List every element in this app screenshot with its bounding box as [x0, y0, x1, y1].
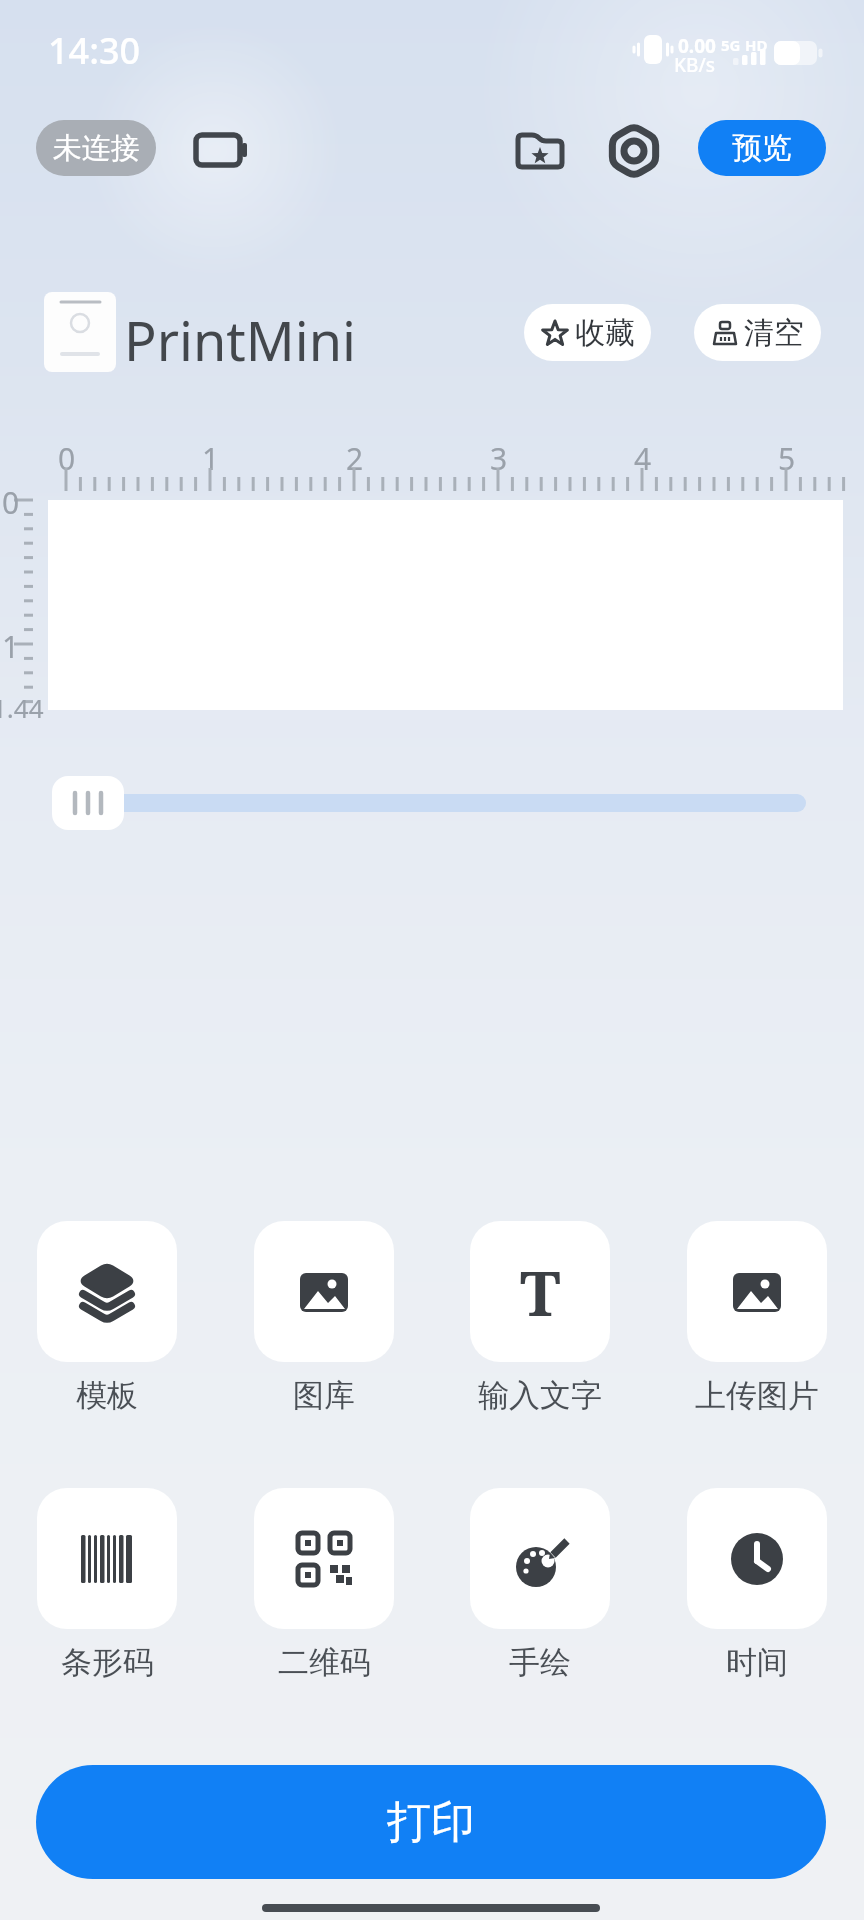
staticText: 收藏	[575, 314, 635, 352]
staticText: 手绘	[509, 1643, 571, 1682]
staticText: 0	[58, 438, 74, 479]
button[interactable]	[254, 1221, 394, 1362]
button[interactable]	[687, 1488, 827, 1629]
button[interactable]: 未连接	[36, 120, 156, 176]
staticText: 清空	[744, 314, 804, 352]
staticText: 2	[346, 438, 362, 479]
button[interactable]	[37, 1221, 177, 1362]
button[interactable]	[470, 1221, 610, 1362]
staticText: 图库	[293, 1376, 355, 1415]
staticText: 上传图片	[695, 1376, 819, 1415]
staticText: 5G	[721, 35, 741, 55]
staticText: 1	[202, 438, 218, 479]
staticText: 1.44	[0, 690, 44, 725]
staticText: PrintMini	[124, 303, 356, 377]
staticText: 输入文字	[478, 1376, 602, 1415]
staticText: 未连接	[53, 130, 140, 167]
staticText: 二维码	[278, 1643, 371, 1682]
staticText: 时间	[726, 1643, 788, 1682]
button[interactable]: 清空	[694, 304, 821, 361]
button[interactable]	[516, 127, 564, 175]
staticText: 打印	[387, 1795, 475, 1850]
staticText: KB/s	[674, 52, 715, 78]
staticText: 条形码	[61, 1643, 154, 1682]
button[interactable]: 预览	[698, 120, 826, 176]
staticText: 14:30	[48, 26, 141, 75]
button[interactable]: 打印	[36, 1765, 826, 1879]
staticText: HD	[745, 35, 768, 55]
staticText: 1	[2, 626, 20, 667]
staticText: 预览	[732, 129, 792, 167]
button[interactable]	[606, 121, 662, 181]
staticText: 4	[634, 438, 650, 479]
button[interactable]: 收藏	[524, 304, 651, 361]
staticText: T	[520, 1250, 561, 1334]
button[interactable]	[37, 1488, 177, 1629]
staticText: 3	[490, 438, 506, 479]
staticText: 模板	[76, 1376, 138, 1415]
staticText: 0	[2, 482, 20, 523]
staticText: 0.00	[678, 33, 716, 59]
button[interactable]	[52, 776, 124, 830]
button[interactable]	[254, 1488, 394, 1629]
button[interactable]	[687, 1221, 827, 1362]
button[interactable]	[194, 130, 252, 170]
staticText: 5	[778, 438, 794, 479]
button[interactable]	[470, 1488, 610, 1629]
